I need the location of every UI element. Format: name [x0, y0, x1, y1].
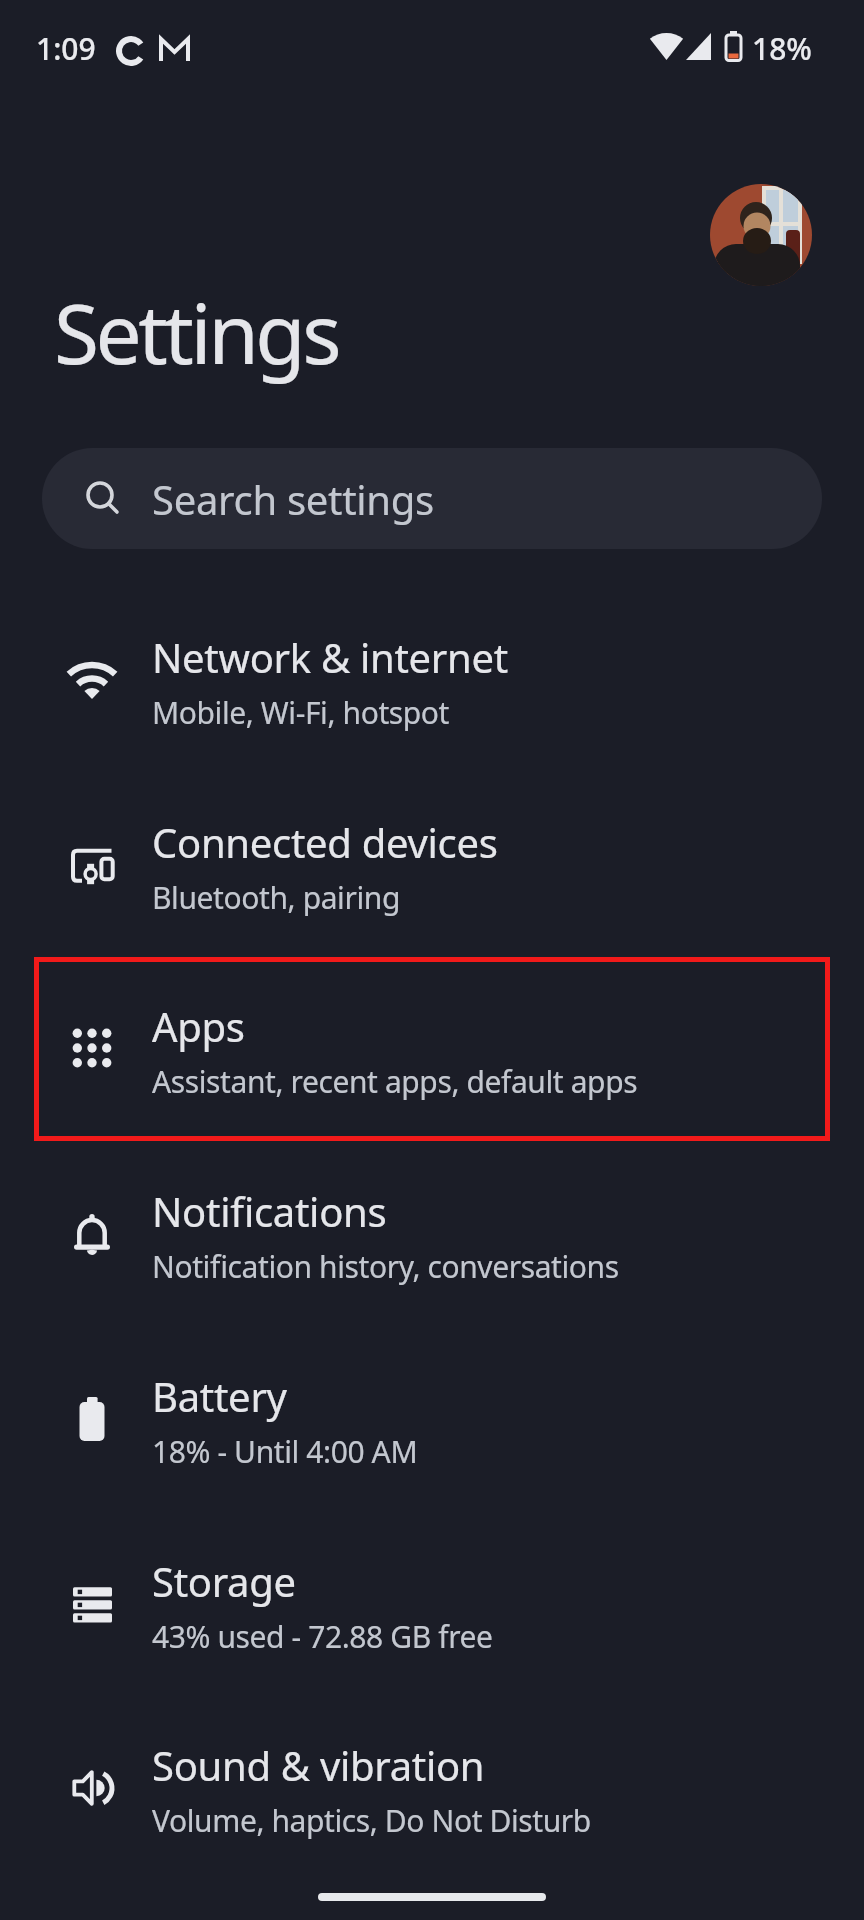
staticText: Storage	[152, 1554, 296, 1608]
staticText: Settings	[54, 276, 339, 388]
button[interactable]: Apps	[0, 958, 864, 1142]
staticText: Apps	[152, 999, 245, 1053]
staticText: Bluetooth, pairing	[152, 877, 400, 918]
staticText: Notifications	[152, 1184, 387, 1238]
staticText: Assistant, recent apps, default apps	[152, 1061, 638, 1102]
staticText: Connected devices	[152, 815, 498, 869]
staticText: 18% - Until 4:00 AM	[152, 1431, 418, 1472]
staticText: Search settings	[152, 472, 434, 526]
button[interactable]: Notifications	[0, 1143, 864, 1327]
staticText: 43% used - 72.88 GB free	[152, 1616, 493, 1657]
button[interactable]: Network & internet	[0, 589, 864, 773]
staticText: Battery	[152, 1369, 287, 1423]
button[interactable]: Connected devices	[0, 774, 864, 958]
staticText: Volume, haptics, Do Not Disturb	[152, 1800, 591, 1841]
staticText: Notification history, conversations	[152, 1246, 619, 1287]
staticText: 1:09	[36, 28, 96, 69]
staticText: Network & internet	[152, 630, 508, 684]
button[interactable]: Search settings	[42, 448, 822, 549]
button[interactable]	[710, 184, 812, 286]
button[interactable]: Storage	[0, 1513, 864, 1697]
staticText: Sound & vibration	[152, 1738, 485, 1792]
button[interactable]: Sound & vibration	[0, 1697, 864, 1881]
staticText: Mobile, Wi-Fi, hotspot	[152, 692, 450, 733]
staticText: 18%	[752, 28, 812, 69]
button[interactable]: Battery	[0, 1328, 864, 1512]
